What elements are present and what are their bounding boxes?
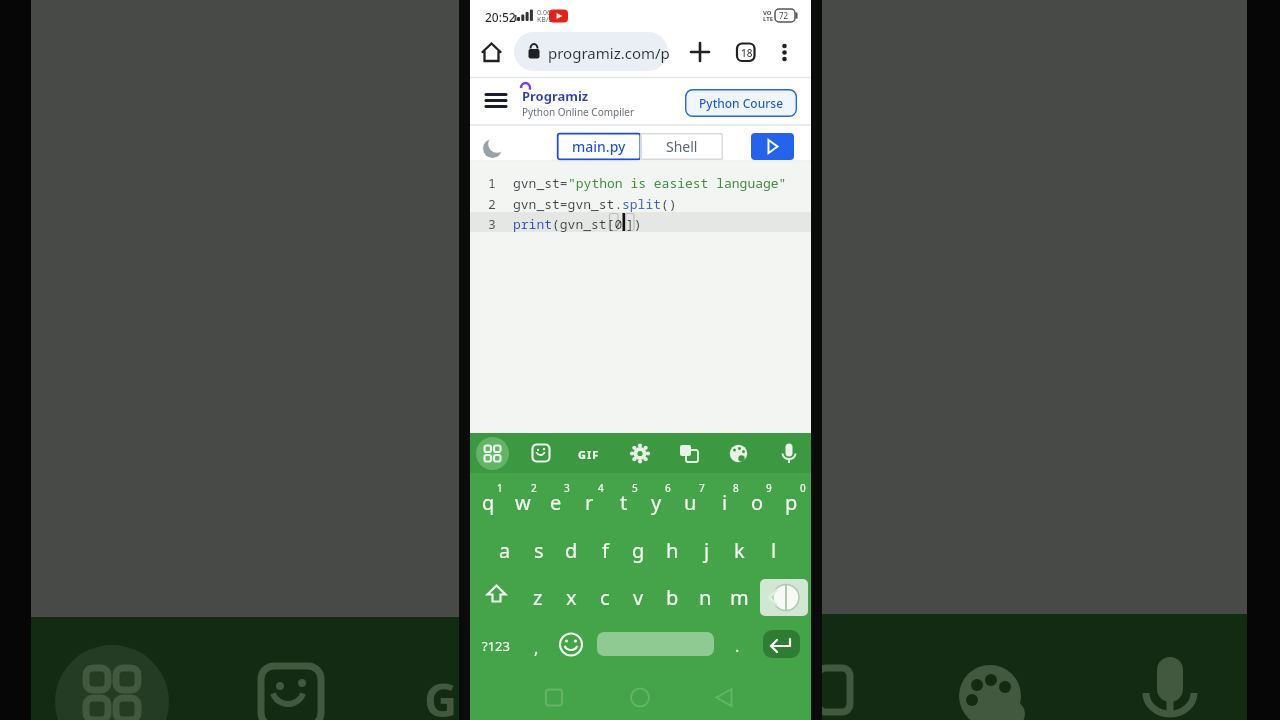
button[interactable]: y: [641, 483, 672, 521]
button[interactable]: [576, 439, 604, 467]
button[interactable]: [476, 437, 509, 470]
staticText: GIF: [578, 447, 600, 462]
staticText: f: [602, 537, 609, 564]
staticText: gvn_st=: [513, 174, 568, 192]
staticText: 20:52: [485, 9, 516, 25]
staticText: y: [651, 489, 662, 516]
staticText: l: [771, 537, 777, 564]
staticText: i: [722, 489, 728, 516]
staticText: programiz.com/p: [548, 43, 670, 63]
staticText: 7: [699, 481, 705, 495]
staticText: j: [704, 537, 710, 564]
staticText: 1: [488, 174, 496, 192]
button[interactable]: h: [657, 531, 688, 569]
staticText: 18: [741, 46, 753, 60]
staticText: "python is easiest language": [568, 174, 787, 192]
button[interactable]: main.py: [557, 133, 641, 160]
staticText: 1: [497, 481, 503, 495]
button[interactable]: [526, 628, 550, 660]
staticText: r: [585, 489, 594, 516]
button[interactable]: [626, 439, 654, 467]
button[interactable]: q: [473, 483, 504, 521]
button[interactable]: [476, 628, 516, 660]
button[interactable]: r: [574, 483, 605, 521]
button[interactable]: n: [690, 578, 721, 616]
button[interactable]: [688, 41, 712, 63]
button[interactable]: b: [657, 578, 688, 616]
button[interactable]: [675, 439, 703, 467]
staticText: ]): [626, 215, 642, 233]
button[interactable]: s: [523, 531, 554, 569]
button[interactable]: u: [675, 483, 706, 521]
button[interactable]: f: [590, 531, 621, 569]
button[interactable]: [480, 40, 504, 64]
staticText: ,: [534, 637, 539, 659]
button[interactable]: Python Course: [685, 89, 797, 117]
staticText: 3: [564, 481, 570, 495]
button[interactable]: [763, 630, 800, 658]
staticText: h: [666, 537, 679, 564]
staticText: (): [661, 195, 677, 213]
button[interactable]: a: [489, 531, 520, 569]
button[interactable]: [597, 632, 714, 656]
button[interactable]: [734, 41, 758, 63]
staticText: g: [632, 537, 645, 564]
button[interactable]: [480, 136, 506, 162]
button[interactable]: [775, 439, 803, 467]
button[interactable]: p: [776, 483, 807, 521]
button[interactable]: [514, 32, 668, 71]
staticText: 8: [733, 481, 739, 495]
button[interactable]: g: [623, 531, 654, 569]
button[interactable]: c: [589, 578, 620, 616]
button[interactable]: m: [724, 578, 755, 616]
button[interactable]: j: [691, 531, 722, 569]
staticText: Python Online Compiler: [522, 105, 635, 119]
staticText: Shell: [666, 137, 698, 156]
button[interactable]: x: [556, 578, 587, 616]
button[interactable]: l: [758, 531, 789, 569]
button[interactable]: [760, 579, 808, 616]
button[interactable]: k: [724, 531, 755, 569]
staticText: 4: [598, 481, 604, 495]
button[interactable]: o: [742, 483, 773, 521]
button[interactable]: [527, 439, 555, 467]
button[interactable]: [555, 630, 587, 660]
button[interactable]: [727, 628, 751, 660]
staticText: 2: [488, 195, 496, 213]
staticText: q: [482, 489, 495, 516]
staticText: (gvn_st[0: [552, 215, 623, 233]
button[interactable]: t: [608, 483, 639, 521]
staticText: e: [550, 489, 562, 516]
button[interactable]: w: [507, 483, 538, 521]
staticText: a: [499, 537, 511, 564]
staticText: n: [699, 584, 712, 611]
staticText: VO: [763, 9, 772, 17]
button[interactable]: [775, 40, 795, 64]
staticText: u: [684, 489, 697, 516]
staticText: 9: [766, 481, 772, 495]
staticText: 6: [665, 481, 671, 495]
button[interactable]: [540, 683, 568, 711]
staticText: p: [785, 489, 798, 516]
staticText: c: [600, 584, 610, 611]
button[interactable]: v: [623, 578, 654, 616]
staticText: d: [565, 537, 578, 564]
staticText: LTE: [763, 15, 774, 23]
button[interactable]: d: [556, 531, 587, 569]
button[interactable]: [751, 133, 794, 160]
button[interactable]: z: [522, 578, 553, 616]
staticText: s: [534, 537, 544, 564]
button[interactable]: Shell: [641, 133, 723, 160]
button[interactable]: [724, 439, 752, 467]
button[interactable]: i: [709, 483, 740, 521]
button[interactable]: [626, 683, 654, 711]
button[interactable]: [482, 89, 510, 113]
staticText: z: [533, 584, 543, 611]
staticText: o: [751, 489, 764, 516]
button[interactable]: [483, 578, 513, 618]
staticText: v: [633, 584, 644, 611]
button[interactable]: e: [540, 483, 571, 521]
staticText: 2: [531, 481, 537, 495]
button[interactable]: [710, 683, 738, 711]
staticText: .: [735, 635, 740, 657]
